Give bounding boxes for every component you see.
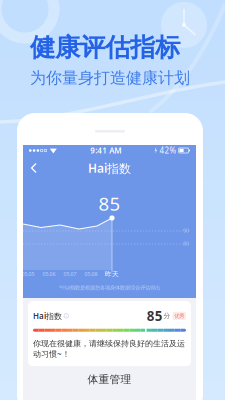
staticText: 昨天 (105, 270, 119, 278)
staticText: 05.07 (63, 270, 76, 278)
staticText: 为你量身打造健康计划 (30, 68, 190, 88)
staticText: 你现在很健康，请继续保持良好的生活及运动习惯~！ (33, 339, 185, 359)
staticText: 优秀 (174, 313, 184, 319)
staticText: 体重管理 (87, 373, 131, 386)
staticText: 9:41 AM (90, 145, 121, 156)
staticText: 05.05 (21, 270, 34, 278)
staticText: 90 (183, 227, 189, 234)
staticText: 85 (147, 307, 163, 325)
staticText: *Hai指数是根据您各项身体数据综合评估得出 (59, 284, 160, 291)
staticText: Hai指数 (88, 160, 131, 176)
staticText: Hai指数 (33, 310, 62, 321)
staticText: 85 (98, 191, 120, 216)
staticText: 05.08 (84, 270, 97, 278)
staticText: 健康评估指标 (30, 32, 180, 63)
staticText: i (66, 313, 67, 318)
staticText: 05.06 (42, 270, 55, 278)
staticText: 80 (183, 240, 189, 247)
staticText: 42% (160, 145, 177, 156)
staticText: 分 (163, 312, 170, 320)
button[interactable]: Back (25, 158, 43, 177)
